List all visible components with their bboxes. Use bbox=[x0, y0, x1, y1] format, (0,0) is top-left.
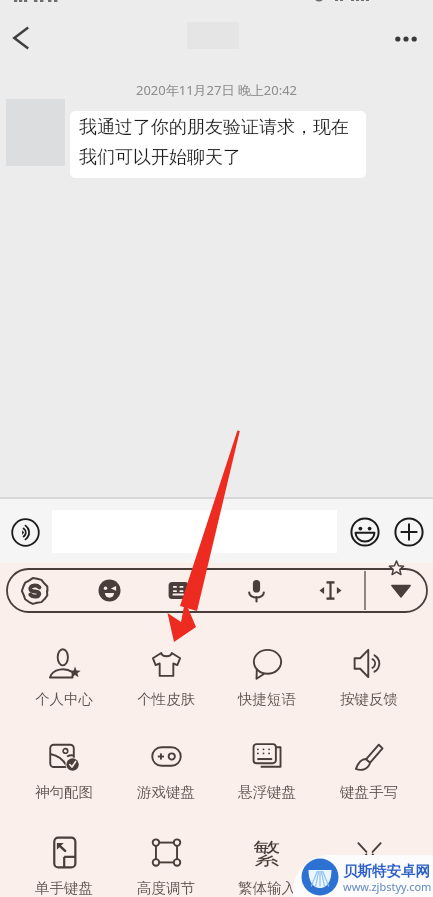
button[interactable]: 按键反馈 bbox=[318, 647, 420, 731]
staticText: 个性皮肤 bbox=[137, 690, 195, 708]
staticText: 贝斯特安卓网 bbox=[343, 862, 430, 880]
button[interactable]: More functions bbox=[389, 512, 429, 552]
button[interactable]: Keyboard tool bbox=[157, 569, 199, 612]
button[interactable]: Keyboard tool bbox=[14, 569, 56, 612]
button[interactable]: 游戏键盘 bbox=[115, 740, 217, 824]
staticText: 个人中心 bbox=[35, 690, 93, 708]
button[interactable]: 悬浮键盘 bbox=[216, 740, 318, 824]
button[interactable]: 神句配图 bbox=[13, 740, 115, 824]
staticText: 键盘手写 bbox=[340, 783, 398, 801]
staticText: 按键反馈 bbox=[340, 690, 398, 708]
button[interactable]: Back bbox=[1, 16, 45, 60]
staticText: 高度调节 bbox=[137, 879, 195, 897]
staticText: 快捷短语 bbox=[238, 690, 296, 708]
staticText: 繁 bbox=[253, 836, 281, 868]
button[interactable]: Keyboard tool bbox=[88, 569, 130, 612]
button[interactable]: Emoji bbox=[345, 512, 385, 552]
staticText: 我通过了你的朋友验证请求，现在 我们可以开始聊天了 bbox=[79, 116, 349, 168]
button[interactable] bbox=[52, 510, 337, 553]
button[interactable]: 快捷短语 bbox=[216, 647, 318, 731]
staticText: 游戏键盘 bbox=[137, 783, 195, 801]
staticText: 繁体输入 bbox=[238, 879, 296, 897]
button[interactable]: 简繁切换 bbox=[318, 836, 420, 897]
button[interactable]: Keyboard tool bbox=[309, 569, 351, 612]
button[interactable]: 繁 bbox=[216, 836, 318, 897]
button[interactable]: 个人中心 bbox=[13, 647, 115, 731]
button[interactable]: Keyboard tool bbox=[235, 569, 277, 612]
staticText: www.zjbstyy.com bbox=[343, 879, 432, 894]
button[interactable]: 键盘手写 bbox=[318, 740, 420, 824]
button[interactable]: Voice input bbox=[5, 512, 45, 552]
button[interactable]: 个性皮肤 bbox=[115, 647, 217, 731]
button[interactable]: 高度调节 bbox=[115, 836, 217, 897]
staticText: 2020年11月27日 晚上20:42 bbox=[0, 81, 433, 99]
staticText: 悬浮键盘 bbox=[238, 783, 296, 801]
button[interactable]: More options bbox=[384, 17, 428, 61]
button[interactable]: 单手键盘 bbox=[13, 836, 115, 897]
button[interactable]: 我通过了你的朋友验证请求，现在 我们可以开始聊天了 bbox=[70, 111, 366, 178]
staticText: 神句配图 bbox=[35, 783, 93, 801]
button[interactable]: Keyboard tool bbox=[380, 569, 422, 612]
staticText: 单手键盘 bbox=[35, 879, 93, 897]
staticText: 简繁切换 bbox=[340, 879, 398, 897]
